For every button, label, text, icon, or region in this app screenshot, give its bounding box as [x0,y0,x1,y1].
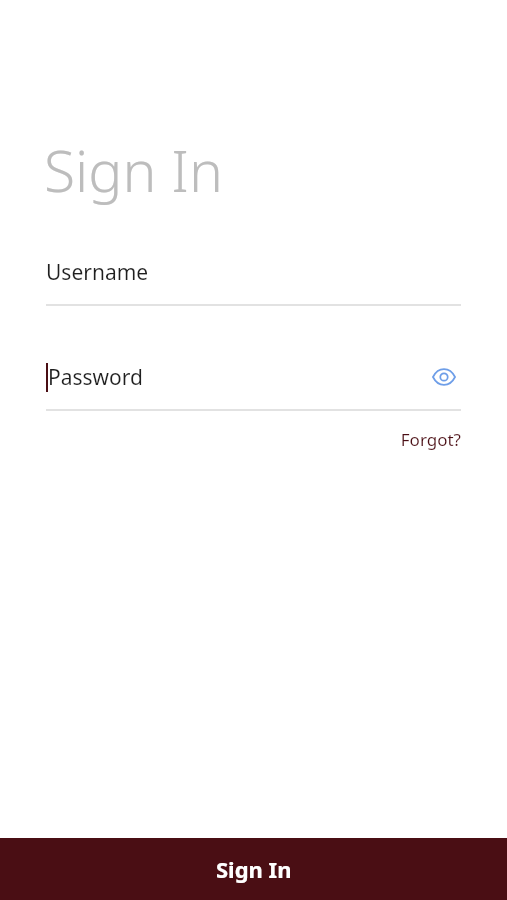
button[interactable]: Show password [427,360,461,394]
staticText: Sign In [44,131,223,209]
staticText: Username [46,258,149,287]
button[interactable]: Sign In [0,838,507,900]
staticText: Password [48,363,143,392]
button[interactable]: Forgot? [354,423,507,456]
button[interactable]: Username [0,251,507,306]
staticText: Sign In [216,854,292,884]
button[interactable]: Password [0,356,507,411]
staticText: Forgot? [400,428,461,451]
